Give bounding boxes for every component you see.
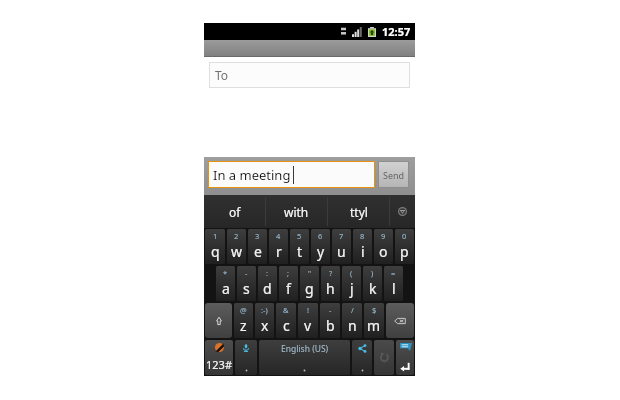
button[interactable]: Backspace <box>386 303 414 338</box>
button[interactable]: with <box>266 195 327 228</box>
staticText: with <box>284 204 309 220</box>
button[interactable]: More suggestions <box>390 195 415 228</box>
staticText: ttyl <box>350 204 368 220</box>
button[interactable]: - <box>320 303 340 338</box>
button[interactable]: of <box>204 195 265 228</box>
staticText: 5 <box>297 231 302 241</box>
staticText: : <box>266 268 269 278</box>
button[interactable]: $ <box>364 303 384 338</box>
staticText: 4 <box>276 231 281 241</box>
staticText: a <box>222 279 230 298</box>
staticText: English (US) <box>281 343 329 355</box>
staticText: 123# <box>206 357 232 372</box>
staticText: u <box>337 242 346 261</box>
button[interactable]: 1 <box>205 229 225 264</box>
staticText: 1 <box>213 231 218 241</box>
button[interactable]: ! <box>298 303 318 338</box>
button[interactable]: ? <box>321 266 340 301</box>
staticText: of <box>229 204 241 220</box>
staticText: :-) <box>261 305 268 315</box>
staticText: 9 <box>381 231 386 241</box>
button[interactable]: 9 <box>374 229 393 264</box>
staticText: v <box>304 316 312 335</box>
button[interactable]: Space <box>259 340 350 375</box>
button[interactable]: 5 <box>290 229 309 264</box>
staticText: 6 <box>318 231 323 241</box>
staticText: " <box>308 268 312 278</box>
staticText: t <box>297 242 303 261</box>
button[interactable]: * <box>216 266 235 301</box>
staticText: ; <box>287 268 290 278</box>
button[interactable]: ( <box>342 266 361 301</box>
button[interactable]: & <box>276 303 296 338</box>
button[interactable]: 123# <box>205 340 233 375</box>
button[interactable]: 4 <box>269 229 288 264</box>
staticText: x <box>261 316 269 335</box>
staticText: y <box>317 242 325 261</box>
button[interactable]: In a meeting <box>209 162 374 187</box>
staticText: b <box>326 316 335 335</box>
staticText: ( <box>350 268 353 278</box>
button[interactable]: Send <box>378 161 409 188</box>
staticText: 3 <box>255 231 260 241</box>
staticText: 2 <box>234 231 239 241</box>
staticText: k <box>369 279 377 298</box>
button[interactable]: 6 <box>311 229 330 264</box>
staticText: o <box>379 242 388 261</box>
button[interactable]: - <box>237 266 256 301</box>
button[interactable]: " <box>300 266 319 301</box>
staticText: e <box>254 242 262 261</box>
staticText: r <box>276 242 282 261</box>
staticText: 8 <box>360 231 365 241</box>
staticText: In a meeting <box>213 166 291 184</box>
staticText: 0 <box>402 231 407 241</box>
staticText: & <box>283 305 289 315</box>
staticText: w <box>231 242 243 261</box>
button[interactable]: 0 <box>395 229 414 264</box>
staticText: p <box>400 242 409 261</box>
staticText: h <box>326 279 335 298</box>
staticText: ! <box>307 305 310 315</box>
staticText: 7 <box>339 231 344 241</box>
staticText: i <box>361 242 365 261</box>
button[interactable]: : <box>258 266 277 301</box>
button[interactable]: ttyl <box>328 195 389 228</box>
staticText: c <box>283 316 290 335</box>
button[interactable]: Undo <box>374 340 394 375</box>
staticText: / <box>351 305 354 315</box>
button[interactable]: 3 <box>248 229 267 264</box>
staticText: f <box>286 279 291 298</box>
staticText: = <box>391 268 396 278</box>
staticText: Send <box>383 169 405 181</box>
button[interactable]: ; <box>279 266 298 301</box>
staticText: n <box>348 316 357 335</box>
button[interactable]: To <box>209 62 410 88</box>
button[interactable]: Voice input <box>235 340 257 375</box>
button[interactable]: :-) <box>255 303 274 338</box>
staticText: z <box>240 316 247 335</box>
staticText: j <box>350 279 354 298</box>
staticText: s <box>243 279 250 298</box>
staticText: d <box>263 279 272 298</box>
staticText: l <box>392 279 396 298</box>
staticText: ) <box>371 268 374 278</box>
staticText: 12:57 <box>382 24 411 39</box>
button[interactable]: @ <box>234 303 253 338</box>
staticText: - <box>245 268 248 278</box>
button[interactable]: Shift <box>205 303 232 338</box>
button[interactable]: 2 <box>227 229 246 264</box>
button[interactable]: / <box>342 303 362 338</box>
button[interactable]: ) <box>363 266 382 301</box>
button[interactable]: 7 <box>332 229 351 264</box>
staticText: * <box>223 268 228 278</box>
staticText: To <box>215 67 229 83</box>
staticText: $ <box>372 305 377 315</box>
button[interactable]: Enter <box>396 340 414 375</box>
staticText: q <box>211 242 220 261</box>
button[interactable]: Share <box>352 340 372 375</box>
button[interactable]: = <box>384 266 403 301</box>
button[interactable]: 8 <box>353 229 372 264</box>
staticText: g <box>305 279 314 298</box>
staticText: - <box>329 305 332 315</box>
staticText: @ <box>240 305 247 315</box>
